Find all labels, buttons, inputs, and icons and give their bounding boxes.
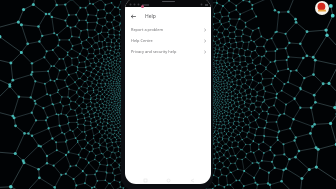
button[interactable]: Privacy and security help <box>125 46 211 57</box>
staticText: Help <box>145 13 156 20</box>
button[interactable]: Report a problem <box>125 24 211 35</box>
button[interactable]: Recent apps <box>141 176 149 184</box>
staticText: Help Centre <box>131 38 153 43</box>
button[interactable]: Back <box>188 176 196 184</box>
staticText: Privacy and security help <box>131 49 177 54</box>
staticText: Report a problem <box>131 27 164 32</box>
button[interactable]: Back <box>128 11 139 22</box>
button[interactable]: Home <box>164 176 172 184</box>
button[interactable]: Help Centre <box>125 35 211 46</box>
